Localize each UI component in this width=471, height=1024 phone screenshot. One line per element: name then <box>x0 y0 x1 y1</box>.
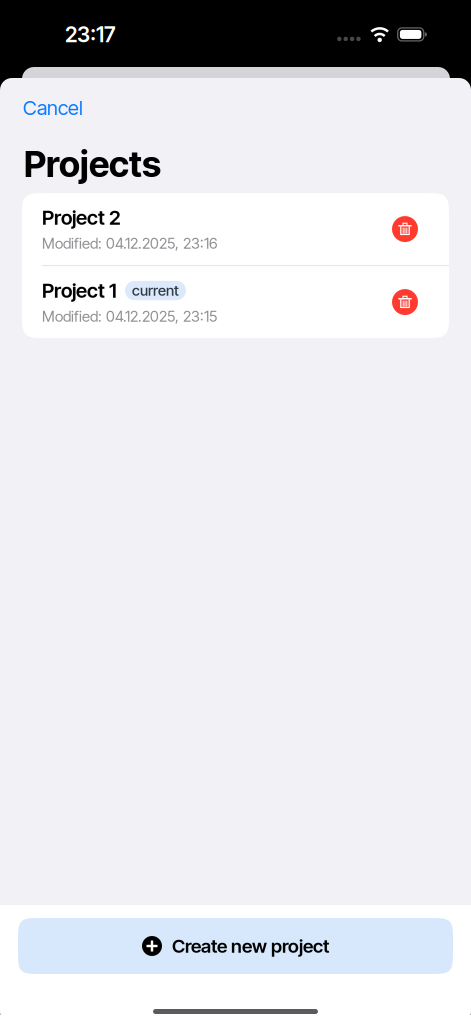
staticText: Project 1 <box>42 279 117 302</box>
button[interactable]: Delete Project 2 <box>383 201 427 257</box>
staticText: Modified: 04.12.2025, 23:16 <box>42 234 217 252</box>
button[interactable]: Create new project <box>0 905 471 974</box>
staticText: Cancel <box>23 96 83 120</box>
staticText: Create new project <box>172 935 329 957</box>
staticText: Projects <box>24 143 161 185</box>
button[interactable]: Delete Project 1 <box>383 274 427 330</box>
staticText: 23:17 <box>65 22 116 47</box>
button[interactable]: Project 2 <box>22 193 449 265</box>
staticText: current <box>132 282 179 299</box>
staticText: Project 2 <box>42 206 121 229</box>
button[interactable]: Project 1 <box>22 266 449 338</box>
staticText: Modified: 04.12.2025, 23:15 <box>42 307 217 325</box>
button[interactable]: Cancel <box>0 78 99 133</box>
